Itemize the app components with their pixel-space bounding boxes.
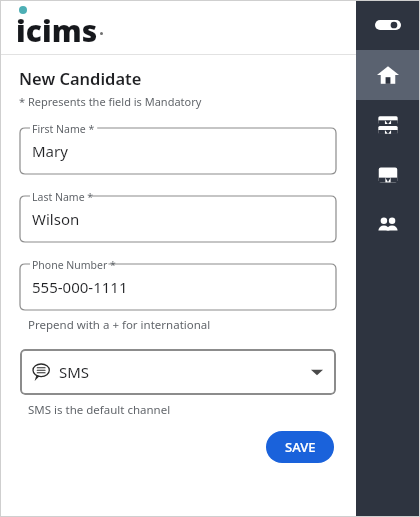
staticText: Last Name * xyxy=(32,190,94,204)
button[interactable]: Home xyxy=(356,50,420,100)
button[interactable]: Stacked inbox xyxy=(356,100,420,150)
button[interactable]: Phone Number * xyxy=(20,258,336,310)
staticText: Phone Number * xyxy=(32,258,116,272)
staticText: Prepend with a + for international xyxy=(28,317,211,333)
staticText: First Name * xyxy=(32,122,95,136)
staticText: SMS is the default channel xyxy=(28,402,171,418)
button[interactable]: Last Name * xyxy=(20,190,336,242)
button[interactable]: SMS xyxy=(20,349,336,395)
button[interactable]: Inbox xyxy=(356,150,420,200)
button[interactable]: People xyxy=(356,200,420,250)
staticText: SMS xyxy=(59,362,90,382)
staticText: SAVE xyxy=(285,438,316,456)
staticText: icims xyxy=(16,10,98,51)
staticText: New Candidate xyxy=(19,67,142,89)
staticText: * Represents the field is Mandatory xyxy=(19,94,202,109)
staticText: Mary xyxy=(32,141,68,161)
button[interactable]: SAVE xyxy=(266,431,334,463)
staticText: Wilson xyxy=(32,209,80,229)
button[interactable]: First Name * xyxy=(20,122,336,174)
button[interactable]: Toggle xyxy=(356,0,420,50)
staticText: 555-000-1111 xyxy=(32,277,128,297)
